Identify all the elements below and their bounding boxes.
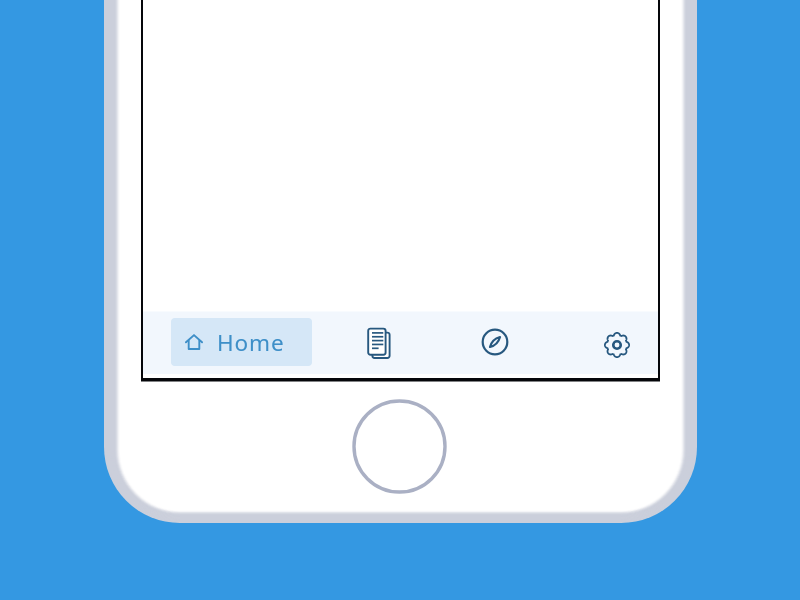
- button[interactable]: Library: [356, 319, 404, 367]
- button[interactable]: Home: [171, 318, 312, 366]
- staticText: Home: [217, 327, 285, 358]
- button[interactable]: Settings: [593, 321, 641, 369]
- button[interactable]: Explore: [471, 318, 519, 366]
